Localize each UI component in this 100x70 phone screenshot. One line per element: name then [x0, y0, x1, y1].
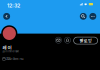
button[interactable]: Back	[3, 13, 10, 20]
staticText: 2024년 4월에 가입	[6, 57, 23, 61]
staticText: 12:32	[7, 2, 20, 9]
button[interactable]: Search	[80, 13, 87, 20]
staticText: 팔로잉	[80, 37, 92, 44]
staticText: 레 이	[2, 44, 11, 51]
staticText: @himnerayo	[2, 50, 19, 53]
button[interactable]: 팔로잉	[74, 37, 98, 44]
button[interactable]: More	[89, 13, 96, 20]
button[interactable]: Message	[55, 37, 61, 43]
button[interactable]: Notifications	[64, 37, 71, 43]
